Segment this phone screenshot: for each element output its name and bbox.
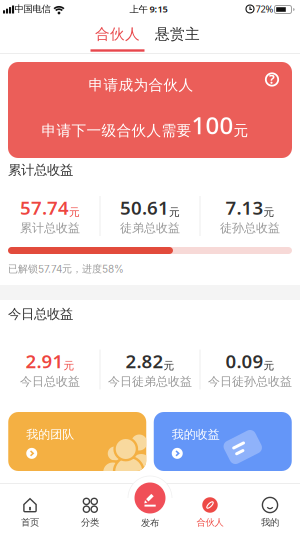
staticText: 徒弟总收益 bbox=[120, 221, 180, 235]
staticText: 今日徒孙总收益 bbox=[208, 374, 292, 389]
staticText: 我的收益 bbox=[172, 427, 220, 442]
button[interactable]: 我的收益 bbox=[154, 412, 292, 471]
staticText: 发布 bbox=[141, 517, 159, 529]
button[interactable]: 首页 bbox=[2, 496, 58, 528]
button[interactable]: 悬赏主 bbox=[150, 18, 204, 50]
staticText: 合伙人 bbox=[196, 517, 223, 528]
button[interactable]: 我的团队 bbox=[8, 412, 146, 471]
button[interactable]: 分类 bbox=[62, 496, 118, 528]
staticText: 已解锁57.74元，进度58% bbox=[8, 263, 124, 275]
staticText: 今日总收益 bbox=[8, 306, 73, 322]
staticText: 悬赏主 bbox=[155, 25, 200, 43]
button[interactable]: 合伙人 bbox=[90, 22, 144, 54]
staticText: 申请下一级合伙人需要100元 bbox=[41, 109, 248, 141]
staticText: 累计总收益 bbox=[20, 221, 80, 235]
staticText: 今日徒弟总收益 bbox=[108, 374, 192, 389]
button[interactable]: 帮助 bbox=[265, 72, 279, 86]
staticText: 2.91元 bbox=[25, 349, 74, 373]
staticText: 徒孙总收益 bbox=[220, 221, 280, 235]
staticText: 申请成为合伙人 bbox=[88, 76, 193, 94]
staticText: 50.61元 bbox=[120, 195, 180, 220]
staticText: 72% bbox=[255, 3, 273, 15]
staticText: 首页 bbox=[21, 517, 39, 528]
staticText: 合伙人 bbox=[95, 25, 140, 43]
staticText: 57.74元 bbox=[20, 195, 80, 220]
staticText: 我的 bbox=[261, 517, 279, 528]
button[interactable]: 发布 bbox=[122, 482, 178, 529]
staticText: 分类 bbox=[81, 517, 99, 528]
staticText: 上午 9:15 bbox=[129, 3, 167, 15]
button[interactable]: 合伙人 bbox=[182, 496, 238, 528]
button[interactable]: 申请成为合伙人 bbox=[8, 62, 292, 158]
staticText: ? bbox=[269, 71, 275, 87]
button[interactable]: 我的 bbox=[242, 496, 298, 528]
staticText: 累计总收益 bbox=[8, 162, 73, 178]
staticText: 今日总收益 bbox=[20, 374, 80, 389]
staticText: 中国电信 bbox=[14, 3, 50, 15]
staticText: 2.82元 bbox=[125, 349, 174, 373]
staticText: 我的团队 bbox=[26, 427, 74, 442]
staticText: 0.09元 bbox=[225, 349, 274, 373]
staticText: 7.13元 bbox=[225, 195, 274, 220]
